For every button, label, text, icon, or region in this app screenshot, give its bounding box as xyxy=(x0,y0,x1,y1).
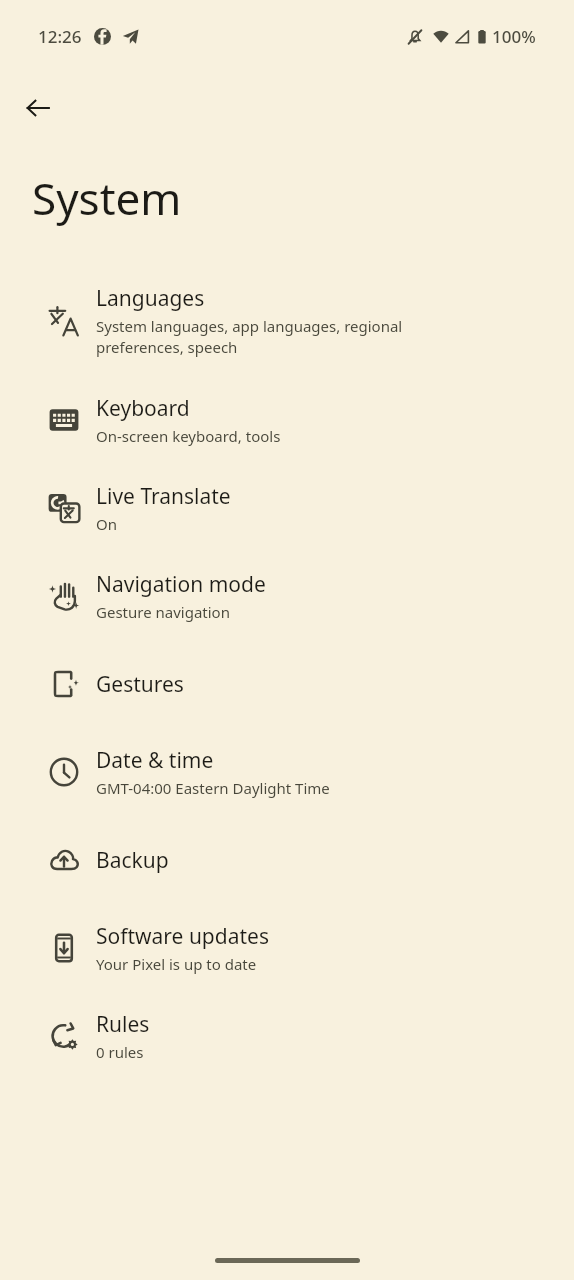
staticText: Languages xyxy=(96,284,205,313)
staticText: 0 rules xyxy=(96,1042,144,1062)
button[interactable]: Rules xyxy=(0,992,574,1080)
staticText: GMT-04:00 Eastern Daylight Time xyxy=(96,778,330,798)
button[interactable]: Date & time xyxy=(0,728,574,816)
staticText: On-screen keyboard, tools xyxy=(96,426,281,446)
staticText: Rules xyxy=(96,1010,150,1039)
staticText: System xyxy=(32,168,182,228)
button[interactable]: Gestures xyxy=(0,640,574,728)
staticText: Live Translate xyxy=(96,482,231,511)
button[interactable]: Languages xyxy=(0,266,574,376)
staticText: Your Pixel is up to date xyxy=(96,954,257,974)
staticText: Gestures xyxy=(96,670,184,699)
staticText: Software updates xyxy=(96,922,269,951)
staticText: Date & time xyxy=(96,746,214,775)
button[interactable]: Back xyxy=(14,84,62,132)
button[interactable]: Software updates xyxy=(0,904,574,992)
staticText: On xyxy=(96,514,117,534)
staticText: Backup xyxy=(96,846,169,875)
staticText: Gesture navigation xyxy=(96,602,230,622)
button[interactable]: Keyboard xyxy=(0,376,574,464)
staticText: Keyboard xyxy=(96,394,190,423)
staticText: 12:26 xyxy=(38,25,82,48)
button[interactable]: Live Translate xyxy=(0,464,574,552)
button[interactable]: Backup xyxy=(0,816,574,904)
staticText: System languages, app languages, regiona… xyxy=(96,316,403,358)
button[interactable]: Navigation mode xyxy=(0,552,574,640)
staticText: Navigation mode xyxy=(96,570,266,599)
staticText: 100% xyxy=(492,25,536,48)
